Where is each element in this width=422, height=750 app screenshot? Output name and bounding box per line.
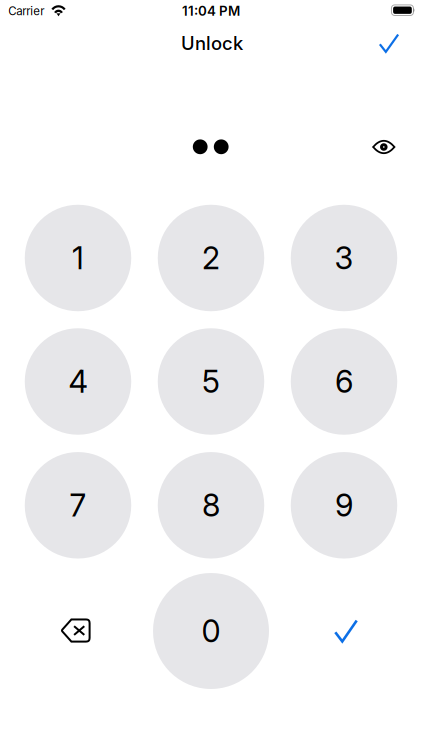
staticText: 3 (334, 239, 353, 276)
staticText: 6 (335, 363, 353, 400)
staticText: Carrier (8, 4, 44, 18)
button[interactable]: 8 (158, 452, 264, 559)
button[interactable]: 3 (291, 205, 397, 311)
staticText: 9 (335, 487, 353, 524)
button[interactable]: Show passcode (362, 125, 406, 169)
button[interactable]: 2 (158, 205, 264, 311)
button[interactable]: Submit (293, 578, 399, 684)
staticText: 2 (202, 239, 220, 276)
button[interactable]: Confirm (367, 21, 411, 65)
button[interactable]: 9 (291, 452, 397, 559)
staticText: 5 (202, 363, 220, 400)
button[interactable]: 0 (153, 573, 269, 689)
button[interactable]: 7 (25, 452, 131, 559)
staticText: 8 (202, 487, 220, 524)
staticText: 0 (201, 612, 220, 649)
button[interactable]: 4 (25, 328, 131, 435)
staticText: 11:04 PM (182, 3, 240, 19)
staticText: 1 (72, 239, 84, 276)
button[interactable]: 1 (25, 205, 131, 311)
staticText: Unlock (181, 32, 243, 54)
button[interactable]: 5 (158, 328, 264, 435)
staticText: 7 (69, 487, 86, 524)
button[interactable]: Delete (22, 577, 129, 684)
staticText: 4 (68, 363, 87, 400)
button[interactable]: 6 (291, 328, 397, 435)
